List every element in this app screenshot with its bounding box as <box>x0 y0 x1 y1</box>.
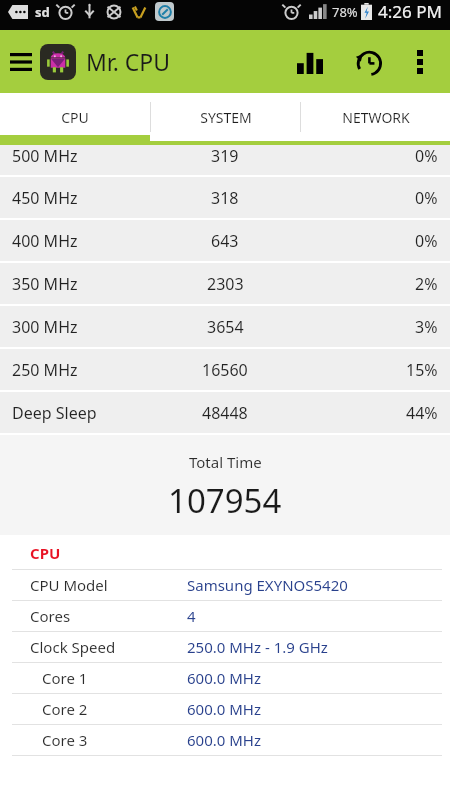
staticText: Samsung EXYNOS5420 <box>187 575 348 595</box>
button[interactable]: Core 1 <box>0 663 450 693</box>
staticText: 350 MHz <box>12 273 78 295</box>
staticText: Total Time <box>189 452 262 472</box>
staticText: 643 <box>211 230 239 252</box>
staticText: 318 <box>211 187 239 209</box>
staticText: Core 3 <box>42 730 88 750</box>
staticText: Core 1 <box>42 668 88 688</box>
staticText: NETWORK <box>342 108 410 127</box>
button[interactable]: Navigation drawer <box>4 45 38 79</box>
button[interactable]: 500 MHz <box>0 145 450 175</box>
staticText: 0% <box>415 230 438 252</box>
staticText: CPU <box>30 543 61 563</box>
staticText: SYSTEM <box>200 108 252 127</box>
staticText: 78% <box>332 3 358 21</box>
button[interactable]: Core 3 <box>0 725 450 755</box>
staticText: 600.0 MHz <box>187 699 262 719</box>
staticText: 0% <box>415 187 438 209</box>
staticText: Cores <box>30 606 71 626</box>
button[interactable]: CPU Model <box>0 570 450 600</box>
staticText: 250 MHz <box>12 359 78 381</box>
staticText: 600.0 MHz <box>187 668 262 688</box>
staticText: CPU <box>61 108 89 127</box>
button[interactable]: Deep Sleep <box>0 392 450 433</box>
button[interactable]: 300 MHz <box>0 306 450 347</box>
staticText: 44% <box>406 402 438 424</box>
button[interactable]: Clock Speed <box>0 632 450 662</box>
staticText: 250.0 MHz - 1.9 GHz <box>187 637 328 657</box>
staticText: 500 MHz <box>12 145 78 167</box>
staticText: 300 MHz <box>12 316 78 338</box>
staticText: 3% <box>415 316 438 338</box>
staticText: 400 MHz <box>12 230 78 252</box>
button[interactable]: 400 MHz <box>0 220 450 261</box>
button[interactable]: 350 MHz <box>0 263 450 304</box>
button[interactable]: 250 MHz <box>0 349 450 390</box>
staticText: Core 2 <box>42 699 88 719</box>
staticText: CPU Model <box>30 575 108 595</box>
staticText: 319 <box>211 145 239 167</box>
button[interactable]: Statistics <box>288 40 332 84</box>
staticText: 600.0 MHz <box>187 730 262 750</box>
staticText: Mr. CPU <box>86 46 171 77</box>
button[interactable]: History <box>346 40 390 84</box>
staticText: sd <box>35 3 50 21</box>
staticText: 15% <box>406 359 438 381</box>
staticText: 0% <box>415 145 438 167</box>
button[interactable]: Core 2 <box>0 694 450 724</box>
button[interactable]: 450 MHz <box>0 177 450 218</box>
staticText: 107954 <box>168 478 282 523</box>
button[interactable]: Cores <box>0 601 450 631</box>
staticText: 48448 <box>202 402 248 424</box>
staticText: Clock Speed <box>30 637 116 657</box>
staticText: 4 <box>187 606 196 626</box>
staticText: 2303 <box>207 273 244 295</box>
staticText: 4:26 PM <box>378 0 442 23</box>
button[interactable]: CPU <box>0 93 150 141</box>
staticText: Deep Sleep <box>12 402 97 424</box>
staticText: 16560 <box>202 359 248 381</box>
staticText: 3654 <box>207 316 244 338</box>
button[interactable]: SYSTEM <box>151 93 300 141</box>
staticText: 450 MHz <box>12 187 78 209</box>
button[interactable]: NETWORK <box>301 93 450 141</box>
button[interactable]: More options <box>400 42 440 82</box>
staticText: 2% <box>415 273 438 295</box>
